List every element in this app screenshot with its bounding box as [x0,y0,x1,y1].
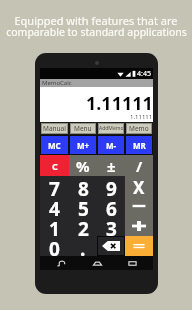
button[interactable]: Recents [117,256,147,270]
staticText: 4 [49,196,60,216]
button[interactable]: Back [46,256,76,270]
staticText: 1.11111 [130,113,153,121]
button[interactable]: M- [98,136,124,154]
staticText: MR [133,140,146,151]
button[interactable]: Equals [125,236,153,256]
staticText: 3 [106,216,117,236]
button[interactable]: / [125,155,153,176]
button[interactable]: 6 [97,196,125,216]
staticText: 7 [49,176,60,196]
button[interactable]: 1 [40,216,69,236]
button[interactable]: MR [126,136,152,154]
staticText: 0 [49,236,60,256]
staticText: / [136,156,143,176]
staticText: ± [107,156,116,176]
button[interactable]: Menu [70,123,96,134]
staticText: comparable to standard applications [6,25,187,39]
button[interactable]: 5 [69,196,97,216]
button[interactable]: Home [82,256,112,270]
staticText: Manual [43,124,66,133]
staticText: X [133,176,145,196]
staticText: 9 [106,176,117,196]
button[interactable]: 2 [69,216,97,236]
button[interactable]: AddMemo [98,123,124,134]
button[interactable]: Memo [126,123,152,134]
staticText: MC [48,140,61,151]
staticText: 1 [49,216,60,236]
button[interactable]: 7 [40,176,69,196]
staticText: 1.11111 [86,91,153,116]
staticText: C [52,160,58,172]
staticText: Memo [129,124,149,133]
button[interactable]: Backspace [98,237,124,255]
staticText: MemoCalc [42,79,72,87]
button[interactable]: C [40,155,69,176]
button[interactable]: Manual [41,123,68,134]
button[interactable]: 9 [97,176,125,196]
staticText: Menu [74,124,92,133]
staticText: 4:45 [137,69,151,79]
staticText: 8 [78,176,89,196]
staticText: Equipped with features that are [14,13,178,28]
button[interactable]: . [69,236,97,256]
button[interactable]: X [125,176,153,196]
staticText: % [76,156,90,176]
staticText: 5 [78,196,89,216]
button[interactable]: % [69,155,97,176]
button[interactable]: Minus [125,196,153,216]
staticText: 2 [78,216,89,236]
button[interactable]: 3 [97,216,125,236]
button[interactable]: 8 [69,176,97,196]
staticText: . [80,236,86,256]
button[interactable]: Plus [125,216,153,236]
button[interactable]: MC [41,136,68,154]
staticText: AddMemo [99,125,124,132]
staticText: 6 [106,196,117,216]
button[interactable]: ± [97,155,125,176]
staticText: M+ [77,140,90,151]
staticText: M- [106,140,117,151]
button[interactable]: 0 [40,236,69,256]
button[interactable]: M+ [70,136,96,154]
button[interactable]: 4 [40,196,69,216]
